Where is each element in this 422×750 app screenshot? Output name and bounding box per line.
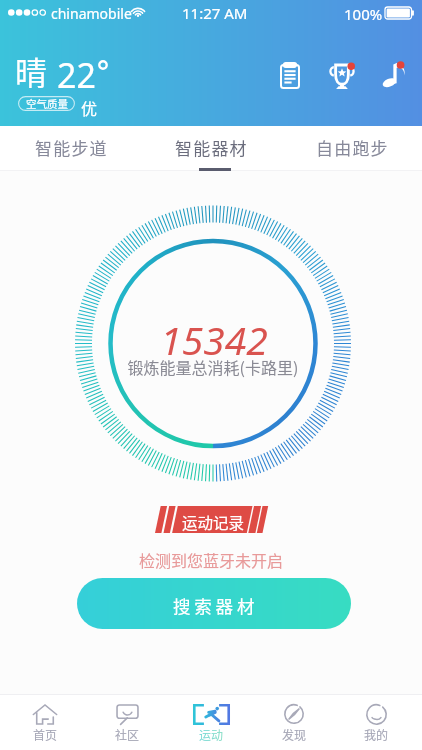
staticText: 社区: [115, 726, 140, 743]
button[interactable]: 搜索器材: [77, 578, 351, 629]
staticText: 15342: [3, 313, 422, 366]
staticText: 搜索器材: [173, 593, 259, 618]
staticText: 22: [57, 52, 96, 98]
button[interactable]: 运动: [171, 694, 251, 750]
button[interactable]: 首页: [5, 694, 85, 750]
staticText: 11:27 AM: [182, 3, 248, 23]
staticText: 自由跑步: [316, 135, 389, 160]
button[interactable]: Music: [377, 58, 411, 92]
button[interactable]: 运动记录: [155, 506, 269, 533]
staticText: 空气质量: [26, 96, 68, 111]
button[interactable]: Achievements: [325, 58, 359, 92]
staticText: 发现: [282, 726, 307, 743]
button[interactable]: 自由跑步: [281, 126, 422, 171]
staticText: 优: [81, 96, 98, 119]
staticText: 智能步道: [35, 135, 108, 160]
button[interactable]: 发现: [254, 694, 334, 750]
staticText: 检测到您蓝牙未开启: [139, 548, 284, 571]
staticText: 运动: [199, 726, 224, 743]
staticText: 首页: [33, 726, 58, 743]
staticText: 运动记录: [182, 511, 245, 533]
staticText: chinamobile: [51, 4, 132, 23]
staticText: 100%: [344, 4, 383, 24]
staticText: 我的: [364, 726, 389, 743]
button[interactable]: 智能器材: [140, 126, 281, 171]
button[interactable]: 社区: [87, 694, 167, 750]
button[interactable]: 我的: [336, 694, 416, 750]
button[interactable]: 智能步道: [0, 126, 140, 171]
staticText: 锻炼能量总消耗(卡路里): [2, 355, 422, 378]
staticText: 智能器材: [175, 135, 248, 160]
button[interactable]: Records: [273, 58, 307, 92]
staticText: 晴: [15, 48, 48, 94]
